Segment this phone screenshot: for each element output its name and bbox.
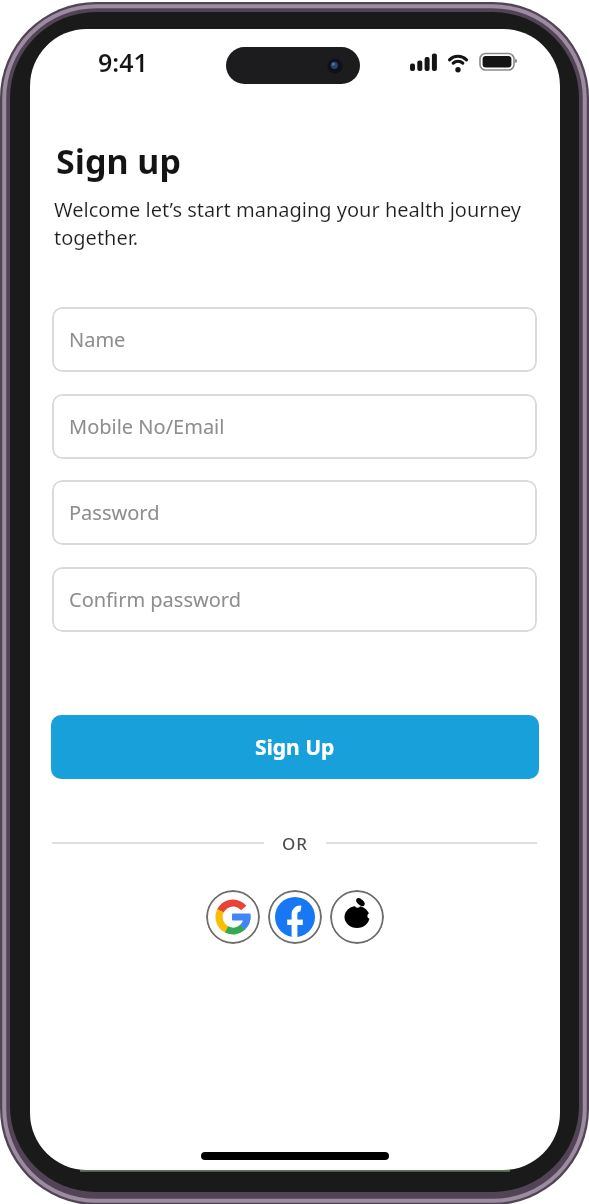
staticText: OR xyxy=(282,832,309,855)
staticText: 9:41 xyxy=(98,45,148,79)
staticText: Sign up xyxy=(56,138,181,184)
button[interactable] xyxy=(206,890,260,944)
button[interactable]: Password xyxy=(52,480,537,545)
button[interactable]: Mobile No/Email xyxy=(52,394,537,459)
button[interactable]: Confirm password xyxy=(52,567,537,632)
staticText: Sign Up xyxy=(255,733,335,762)
button[interactable]: Sign Up xyxy=(51,715,539,779)
button[interactable] xyxy=(330,890,384,944)
button[interactable]: Name xyxy=(52,307,537,372)
staticText: Password xyxy=(69,499,160,526)
button[interactable] xyxy=(268,890,322,944)
staticText: Welcome let’s start managing your health… xyxy=(54,196,522,251)
staticText: Mobile No/Email xyxy=(69,413,225,440)
staticText: Name xyxy=(69,326,126,353)
staticText: Confirm password xyxy=(69,586,241,613)
